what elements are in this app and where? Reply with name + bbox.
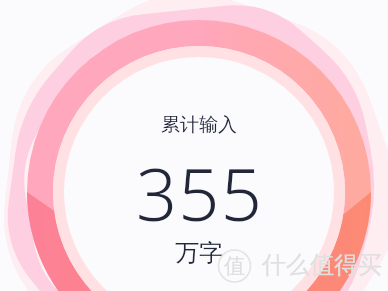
staticText: 累计输入 — [161, 113, 237, 137]
staticText: 万字 — [175, 238, 223, 268]
staticText: 什么值得买 — [262, 250, 382, 280]
staticText: 值 — [224, 253, 245, 279]
staticText: 355 — [136, 144, 263, 242]
